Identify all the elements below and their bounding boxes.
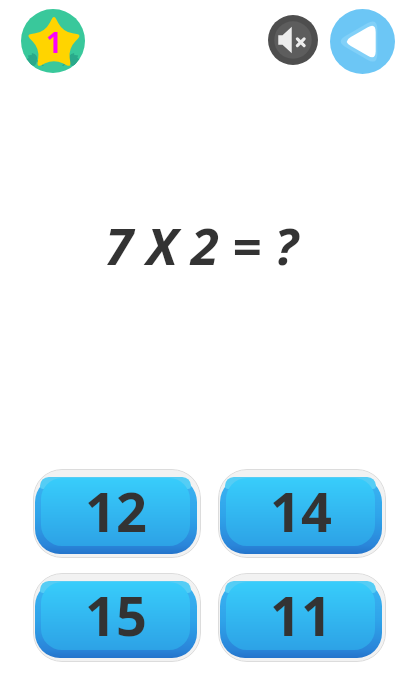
staticText: 1: [46, 23, 63, 61]
button[interactable]: Mute: [268, 15, 318, 65]
button[interactable]: Back: [330, 9, 395, 74]
staticText: 14: [270, 474, 332, 542]
staticText: 7 X 2 = ?: [105, 210, 298, 279]
staticText: 12: [85, 474, 147, 542]
staticText: 15: [85, 578, 147, 646]
button[interactable]: 11: [218, 573, 386, 662]
staticText: 11: [270, 578, 332, 646]
button[interactable]: 12: [33, 469, 201, 558]
button[interactable]: 14: [218, 469, 386, 558]
button[interactable]: Level 1: [21, 9, 85, 73]
button[interactable]: 15: [33, 573, 201, 662]
